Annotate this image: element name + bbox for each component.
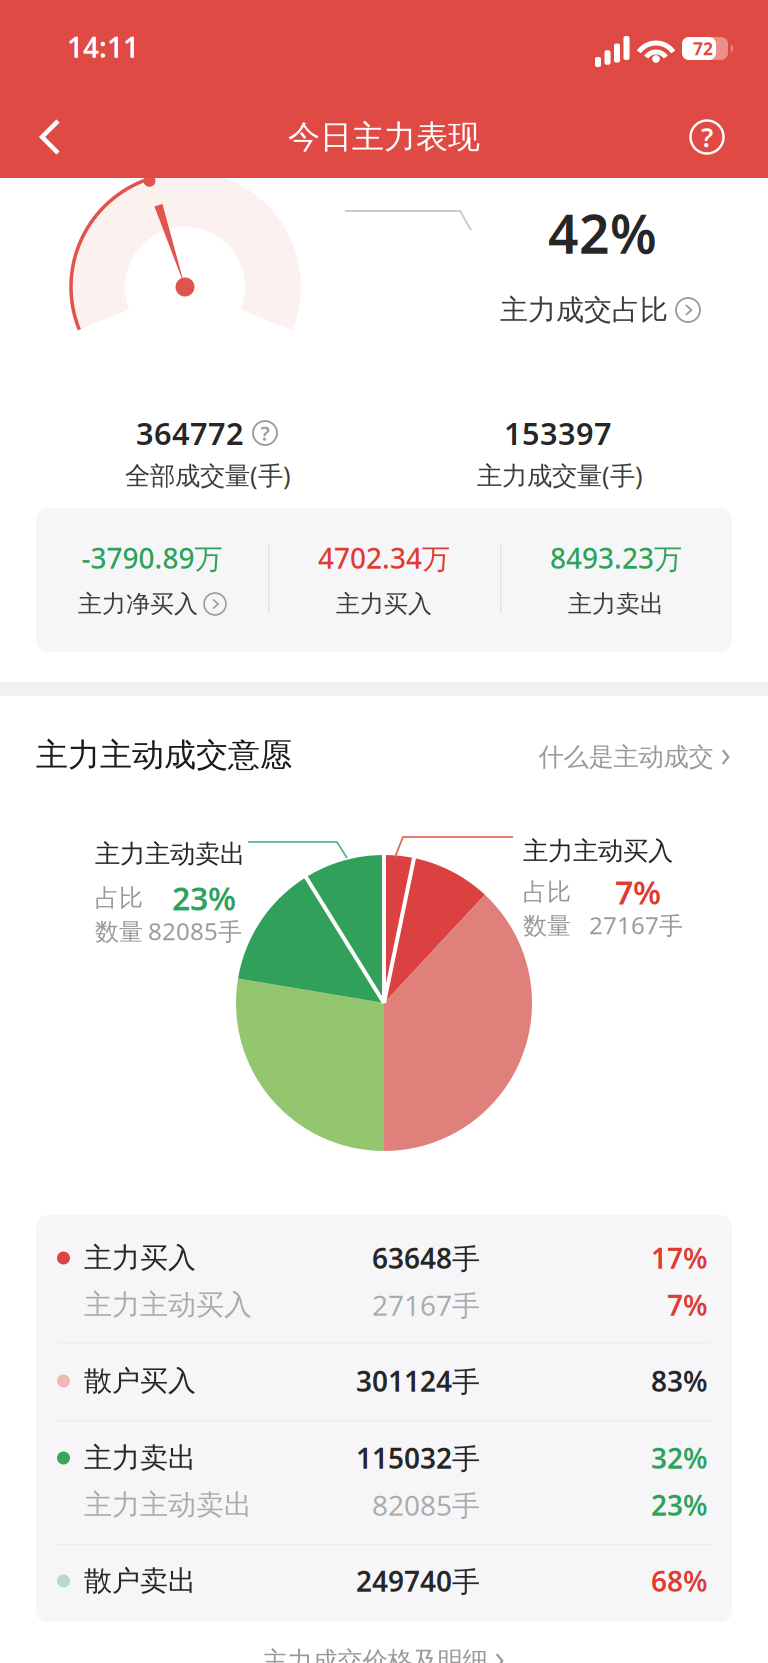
button[interactable]: 什么是主动成交	[538, 741, 731, 772]
staticText: 主力净买入	[78, 589, 198, 619]
staticText: 主力买入	[84, 1241, 196, 1275]
staticText: 主力成交价格及明细	[262, 1645, 487, 1663]
staticText: 主力卖出	[568, 589, 664, 619]
staticText: 301124手	[356, 1362, 480, 1400]
staticText: 今日主力表现	[288, 117, 480, 157]
staticText: 68%	[651, 1562, 708, 1600]
staticText: 82085手	[372, 1486, 480, 1524]
staticText: 42%	[548, 198, 657, 268]
staticText: 7%	[667, 1286, 708, 1324]
staticText: 主力主动卖出	[84, 1488, 252, 1522]
staticText: 主力主动卖出	[95, 838, 245, 869]
staticText: 占比	[95, 883, 143, 913]
staticText: 主力主动买入	[84, 1288, 252, 1322]
staticText: 8493.23万	[550, 539, 682, 577]
staticText: 主力主动成交意愿	[36, 735, 292, 775]
staticText: 散户卖出	[84, 1564, 196, 1598]
staticText: 数量	[523, 911, 571, 941]
staticText: 23%	[172, 877, 236, 919]
staticText: 主力卖出	[84, 1441, 196, 1475]
staticText: 27167手	[372, 1286, 480, 1324]
staticText: 72	[693, 37, 713, 60]
staticText: 23%	[651, 1486, 708, 1524]
button[interactable]: 主力成交占比	[460, 293, 700, 327]
staticText: 全部成交量(手)	[125, 458, 291, 492]
staticText: 364772	[136, 413, 244, 453]
staticText: 17%	[651, 1239, 708, 1277]
staticText: 32%	[651, 1439, 708, 1477]
staticText: 什么是主动成交	[538, 741, 713, 772]
staticText: 115032手	[356, 1439, 480, 1477]
staticText: 82085手	[148, 915, 242, 947]
staticText: 83%	[651, 1362, 708, 1400]
button[interactable]: 主力净买入	[78, 589, 226, 619]
staticText: 7%	[615, 871, 661, 913]
staticText: -3790.89万	[81, 539, 222, 577]
staticText: 主力成交占比	[500, 293, 668, 327]
staticText: 数量	[95, 917, 143, 947]
staticText: ?	[701, 119, 713, 155]
staticText: 153397	[504, 413, 612, 453]
staticText: 63648手	[372, 1239, 480, 1277]
staticText: 14:11	[67, 28, 139, 66]
staticText: 249740手	[356, 1562, 480, 1600]
staticText: 占比	[523, 877, 571, 907]
staticText: 主力买入	[336, 589, 432, 619]
staticText: ?	[260, 420, 269, 446]
staticText: 散户买入	[84, 1364, 196, 1398]
staticText: 主力成交量(手)	[477, 458, 643, 492]
staticText: 27167手	[589, 909, 683, 941]
button[interactable]: 全部成交量说明	[253, 421, 277, 445]
staticText: 4702.34万	[318, 539, 450, 577]
staticText: 主力主动买入	[523, 835, 673, 866]
button[interactable]: 主力成交价格及明细	[262, 1645, 505, 1663]
